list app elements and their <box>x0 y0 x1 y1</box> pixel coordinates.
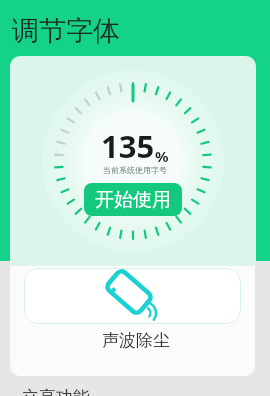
button[interactable]: 开始使用 <box>84 183 182 216</box>
button[interactable]: 声波除尘 <box>24 268 241 324</box>
staticText: 135 <box>101 125 155 167</box>
staticText: 开始使用 <box>95 188 171 212</box>
staticText: 立享功能 <box>22 387 90 396</box>
staticText: 调节字体 <box>12 14 120 48</box>
other: 声波除尘 <box>103 269 163 323</box>
staticText: 当前系统使用字号 <box>103 165 167 175</box>
staticText: % <box>155 146 169 166</box>
staticText: 声波除尘 <box>102 330 170 351</box>
